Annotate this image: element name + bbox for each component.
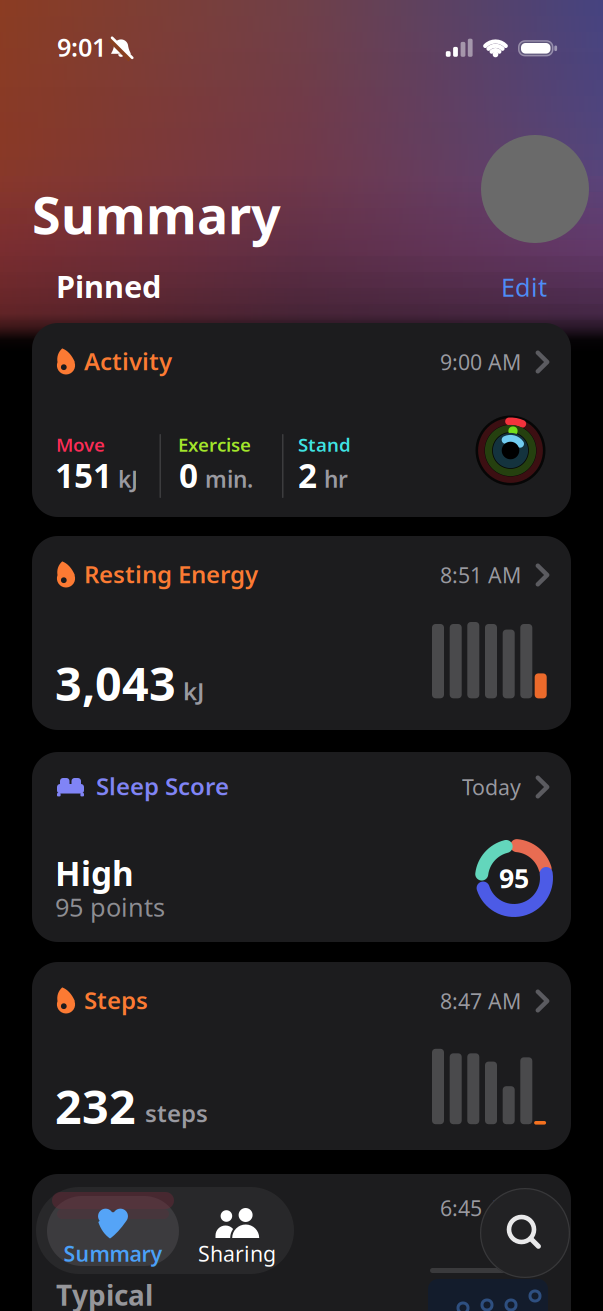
staticText: kJ bbox=[183, 675, 204, 707]
button[interactable]: Sleep Score bbox=[32, 752, 571, 942]
staticText: Move bbox=[56, 432, 105, 457]
staticText: Pinned bbox=[56, 266, 161, 306]
button[interactable] bbox=[481, 135, 589, 243]
staticText: Edit bbox=[501, 270, 547, 304]
staticText: Exercise bbox=[178, 432, 251, 457]
button[interactable]: Edit bbox=[482, 263, 566, 311]
staticText: Activity bbox=[84, 345, 172, 377]
staticText: Stand bbox=[298, 432, 351, 457]
staticText: Summary bbox=[32, 179, 281, 249]
staticText: min. bbox=[205, 464, 253, 494]
staticText: Summary bbox=[63, 1239, 162, 1268]
staticText: 232 bbox=[55, 1075, 136, 1137]
button[interactable]: Steps bbox=[32, 962, 571, 1150]
staticText: Steps bbox=[84, 984, 148, 1016]
staticText: 9:00 AM bbox=[440, 348, 521, 376]
staticText: 3,043 bbox=[55, 652, 176, 714]
staticText: 151 bbox=[55, 453, 112, 497]
staticText: hr bbox=[324, 464, 348, 494]
button[interactable]: Activity bbox=[32, 323, 571, 517]
staticText: kJ bbox=[118, 464, 138, 494]
staticText: 0 bbox=[179, 453, 198, 497]
staticText: Resting Energy bbox=[84, 558, 258, 590]
staticText: Sleep Score bbox=[96, 770, 229, 802]
staticText: Typical bbox=[56, 1276, 153, 1311]
button[interactable]: 6:45 AM bbox=[32, 1174, 571, 1311]
staticText: High bbox=[55, 851, 134, 895]
button[interactable]: Summary bbox=[47, 1196, 179, 1266]
staticText: steps bbox=[145, 1097, 208, 1129]
staticText: Sharing bbox=[198, 1239, 276, 1268]
staticText: 95 points bbox=[55, 890, 165, 924]
button[interactable]: Sharing bbox=[182, 1190, 292, 1272]
staticText: 6:45 AM bbox=[440, 1194, 521, 1222]
button[interactable]: Resting Energy bbox=[32, 536, 571, 730]
staticText: Today bbox=[462, 773, 521, 801]
button[interactable] bbox=[480, 1188, 570, 1278]
staticText: 2 bbox=[298, 453, 317, 497]
staticText: 8:47 AM bbox=[440, 987, 521, 1015]
staticText: 8:51 AM bbox=[440, 561, 521, 589]
staticText: 95 bbox=[499, 860, 529, 896]
staticText: 9:01 bbox=[57, 30, 106, 64]
